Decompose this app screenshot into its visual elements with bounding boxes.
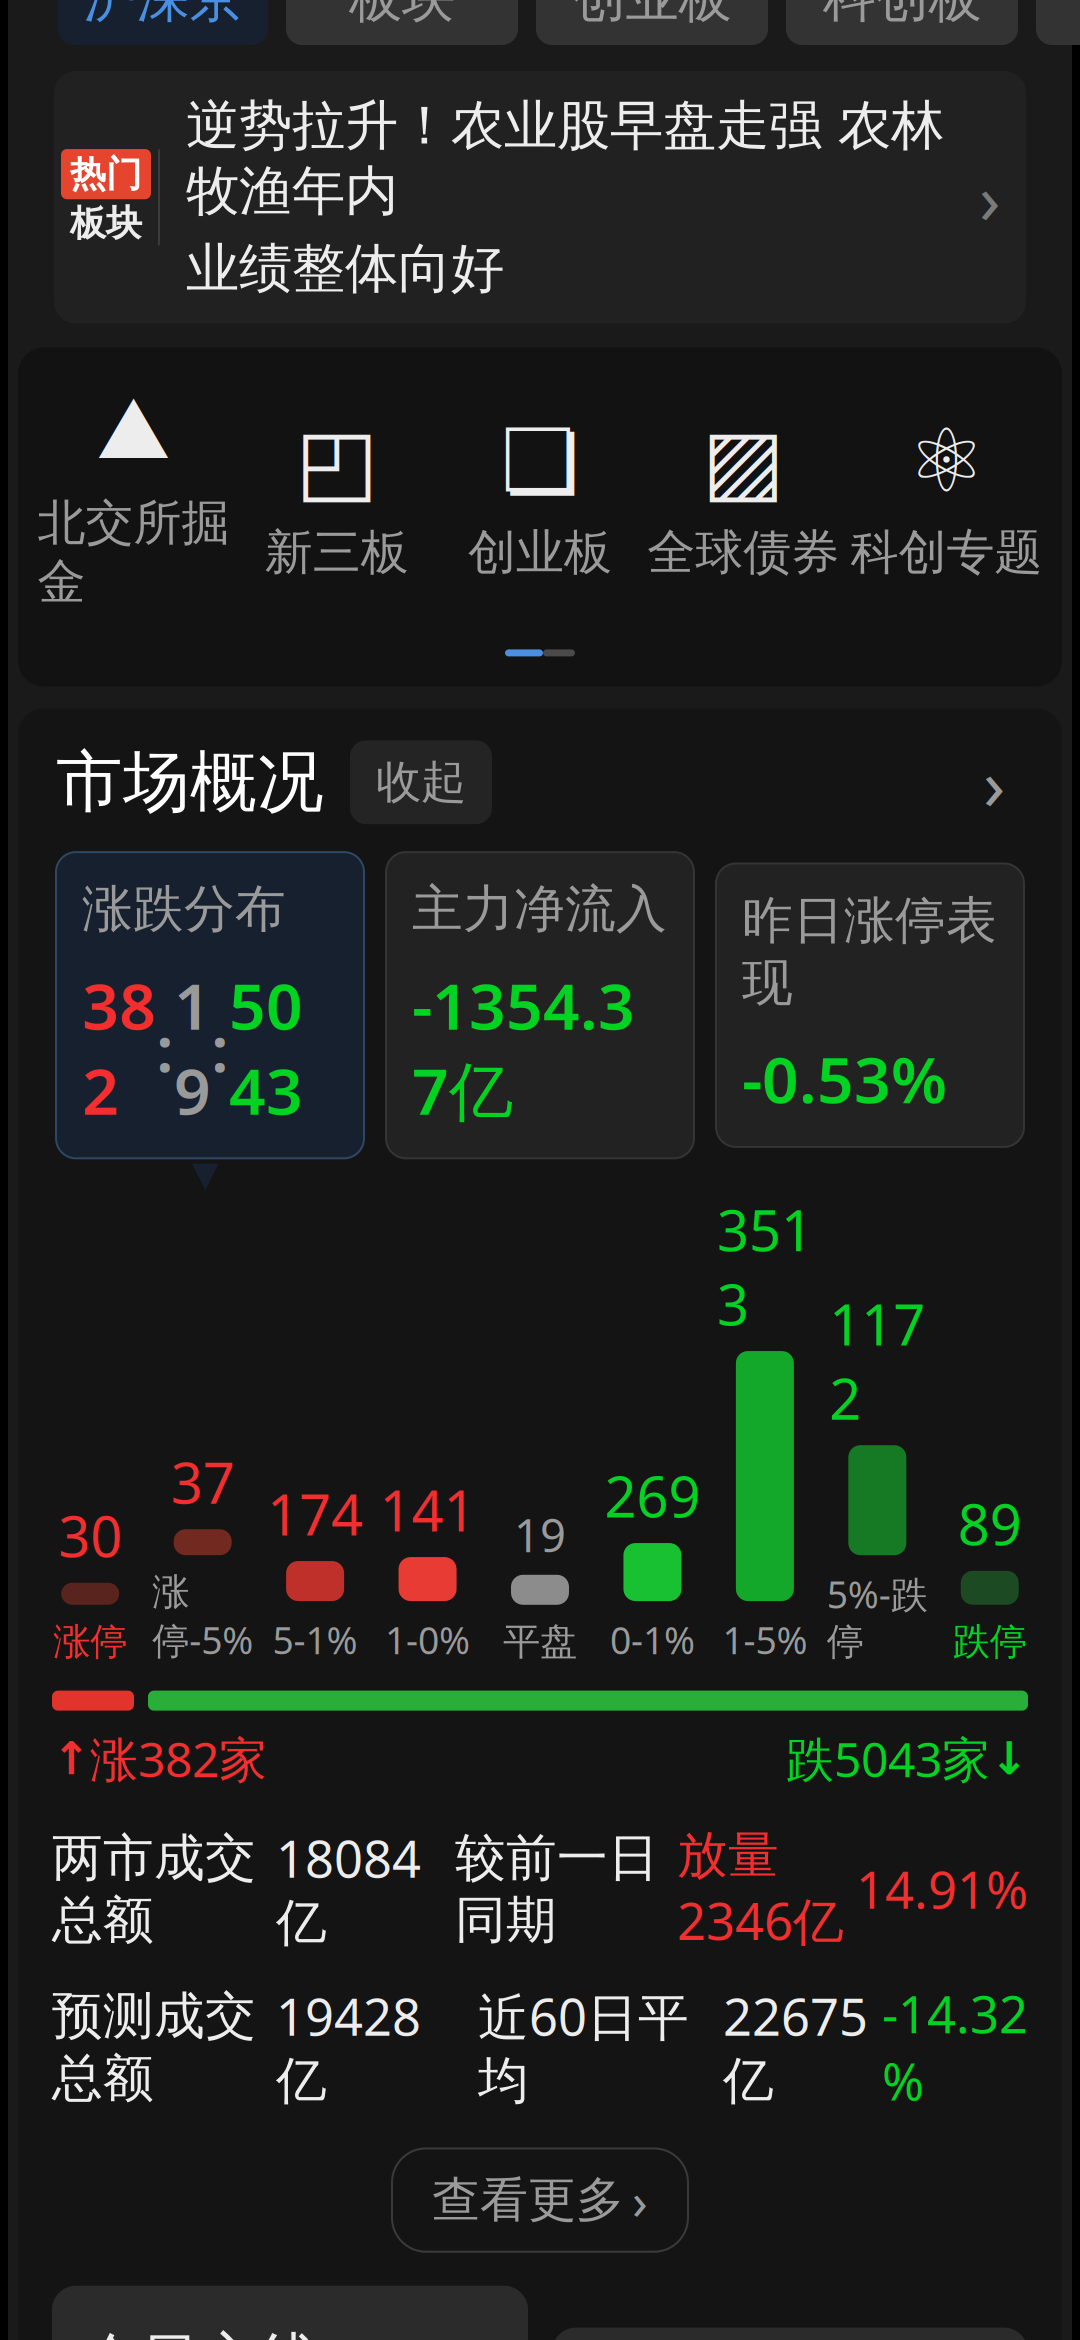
staticText: 近60日平均 — [478, 1982, 689, 2112]
button[interactable]: 今日主线 — [52, 2286, 528, 2340]
staticText: 创业板 — [572, 0, 731, 31]
staticText: 14.91% — [856, 1855, 1028, 1923]
staticText: 30 — [58, 1498, 122, 1573]
button[interactable]: ❏ — [438, 407, 642, 598]
staticText: 预测成交总额 — [52, 1985, 256, 2109]
button[interactable]: 主力净流入 — [386, 852, 694, 1158]
staticText: 19428亿 — [276, 1982, 421, 2112]
staticText: 两市成交总额 — [52, 1827, 256, 1951]
staticText: 科创板 — [822, 0, 981, 31]
button[interactable]: ▨ — [642, 407, 845, 598]
button[interactable]: ◰ — [235, 407, 438, 598]
staticText: ◰ — [295, 411, 378, 511]
staticText: 放量2346亿 — [677, 1824, 844, 1954]
staticText: ❏ — [500, 411, 579, 511]
button[interactable]: 创业板 — [536, 0, 768, 45]
button[interactable]: 涨跌分布 — [56, 852, 364, 1158]
staticText: ↓ — [990, 1733, 1028, 1784]
staticText: › — [632, 2166, 648, 2234]
staticText: 141 — [380, 1473, 476, 1547]
staticText: 沪深京 — [83, 0, 242, 31]
staticText: 269 — [604, 1459, 700, 1533]
button[interactable]: 热门 — [54, 71, 1026, 323]
staticText: 市场概况 — [56, 741, 324, 823]
staticText: ▨ — [702, 411, 785, 511]
button[interactable]: 市场概况详情 — [964, 752, 1024, 812]
button[interactable]: ⛰ — [32, 377, 235, 627]
staticText: 收起 — [376, 754, 466, 810]
button[interactable]: 收起 — [350, 740, 492, 824]
staticText: 跌停 — [953, 1619, 1027, 1665]
staticText: 1-5% — [722, 1615, 807, 1665]
staticText: 1-0% — [385, 1615, 470, 1665]
staticText: 科创专题 — [850, 523, 1042, 582]
button[interactable]: 最强板块 — [552, 2328, 1028, 2340]
staticText: ↑ — [52, 1733, 90, 1784]
staticText: 昨日涨停表现 — [742, 889, 997, 1014]
staticText: 涨382家 — [90, 1727, 267, 1790]
staticText: 174 — [267, 1477, 363, 1551]
staticText: 382 — [82, 962, 156, 1132]
staticText: ▾ — [192, 1142, 219, 1203]
staticText: 逆势拉升！农业股早盘走强 农林牧渔年内 — [186, 93, 944, 224]
button[interactable]: 科创板 — [786, 0, 1018, 45]
staticText: ⛰ — [97, 389, 171, 474]
staticText: 业绩整体向好 — [186, 236, 504, 301]
staticText: 22675亿 — [723, 1982, 868, 2112]
staticText: 涨跌分布 — [82, 878, 286, 940]
staticText: 涨停-5% — [152, 1569, 253, 1665]
staticText: 19 — [514, 1505, 566, 1565]
button[interactable]: 沪深京 — [58, 0, 268, 45]
staticText: -0.53% — [742, 1036, 947, 1121]
button[interactable]: 昨日涨停表现 — [716, 863, 1024, 1147]
staticText: 全球债券 — [647, 523, 839, 582]
staticText: 北交所掘金 — [38, 493, 230, 611]
staticText: 平盘 — [503, 1619, 577, 1665]
staticText: -14.32% — [882, 1980, 1028, 2114]
staticText: 新三板 — [265, 523, 409, 582]
staticText: 热门 — [70, 152, 142, 196]
staticText: 主力净流入 — [412, 878, 667, 940]
staticText: 较前一日同期 — [455, 1827, 659, 1951]
staticText: 涨停 — [53, 1619, 127, 1665]
staticText: 查看更多 — [432, 2171, 624, 2230]
staticText: 板块 — [349, 0, 455, 31]
staticText: 89 — [958, 1486, 1022, 1561]
button[interactable]: ⚛ — [845, 407, 1048, 598]
staticText: 0-1% — [610, 1615, 695, 1665]
staticText: : — [211, 1005, 229, 1090]
staticText: › — [979, 151, 1000, 243]
staticText: 5043 — [229, 962, 303, 1132]
staticText: -1354.37亿 — [412, 962, 635, 1132]
button[interactable]: 北证 — [1036, 0, 1080, 45]
staticText: 跌5043家 — [786, 1727, 990, 1790]
button[interactable]: 板块 — [286, 0, 518, 45]
staticText: 1172 — [829, 1286, 925, 1435]
staticText: 37 — [171, 1445, 235, 1519]
staticText: 板块 — [70, 201, 142, 245]
staticText: 5-1% — [273, 1615, 358, 1665]
staticText: 今日主线 — [82, 2324, 318, 2340]
button[interactable]: 查看更多 — [392, 2148, 688, 2252]
staticText: 3513 — [717, 1192, 813, 1341]
staticText: ⚛ — [907, 411, 986, 511]
staticText: 5%-跌停 — [827, 1569, 928, 1665]
staticText: 18084亿 — [276, 1824, 421, 1954]
staticText: 19 — [174, 962, 211, 1132]
staticText: : — [156, 1005, 174, 1090]
staticText: › — [983, 734, 1005, 830]
staticText: 创业板 — [468, 523, 612, 582]
